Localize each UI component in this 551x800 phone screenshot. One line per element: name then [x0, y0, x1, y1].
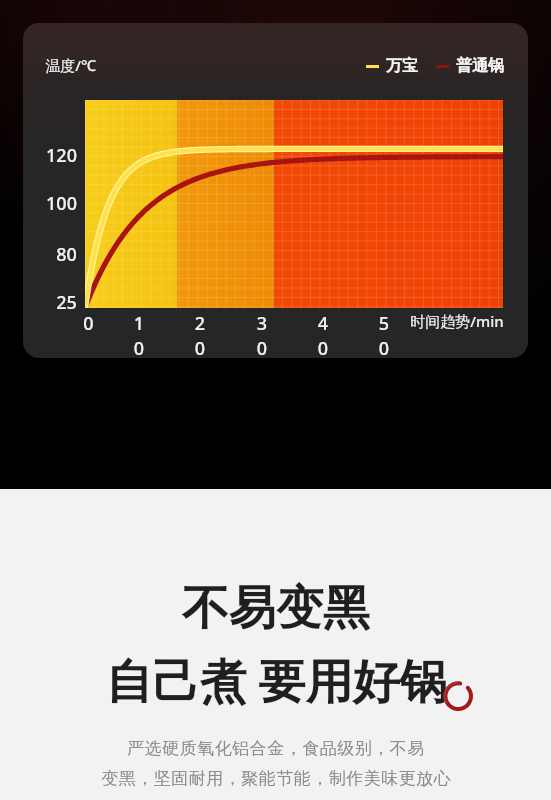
staticText: 10 — [130, 311, 148, 358]
staticText: 40 — [314, 311, 332, 358]
staticText: 20 — [191, 311, 209, 358]
staticText: 80 — [56, 242, 77, 267]
staticText: 0 — [83, 311, 94, 336]
staticText: 25 — [56, 290, 77, 315]
staticText: 100 — [46, 191, 77, 216]
staticText: 30 — [253, 311, 271, 358]
staticText: 严选硬质氧化铝合金，食品级别，不易 — [127, 738, 425, 759]
staticText: 普通锅 — [456, 56, 504, 76]
staticText: 50 — [375, 311, 393, 358]
staticText: 时间趋势/min — [410, 311, 504, 331]
staticText: 温度/℃ — [45, 55, 96, 75]
staticText: 120 — [46, 143, 77, 168]
button[interactable]: 普通锅 — [436, 56, 504, 76]
staticText: 不易变黑 — [182, 579, 370, 638]
staticText: 万宝 — [386, 56, 418, 76]
button[interactable]: 万宝 — [23, 23, 528, 358]
staticText: 自己煮 要用好锅 — [105, 648, 447, 712]
button[interactable]: 万宝 — [366, 56, 418, 76]
staticText: 变黑，坚固耐用，聚能节能，制作美味更放心 — [101, 768, 451, 789]
